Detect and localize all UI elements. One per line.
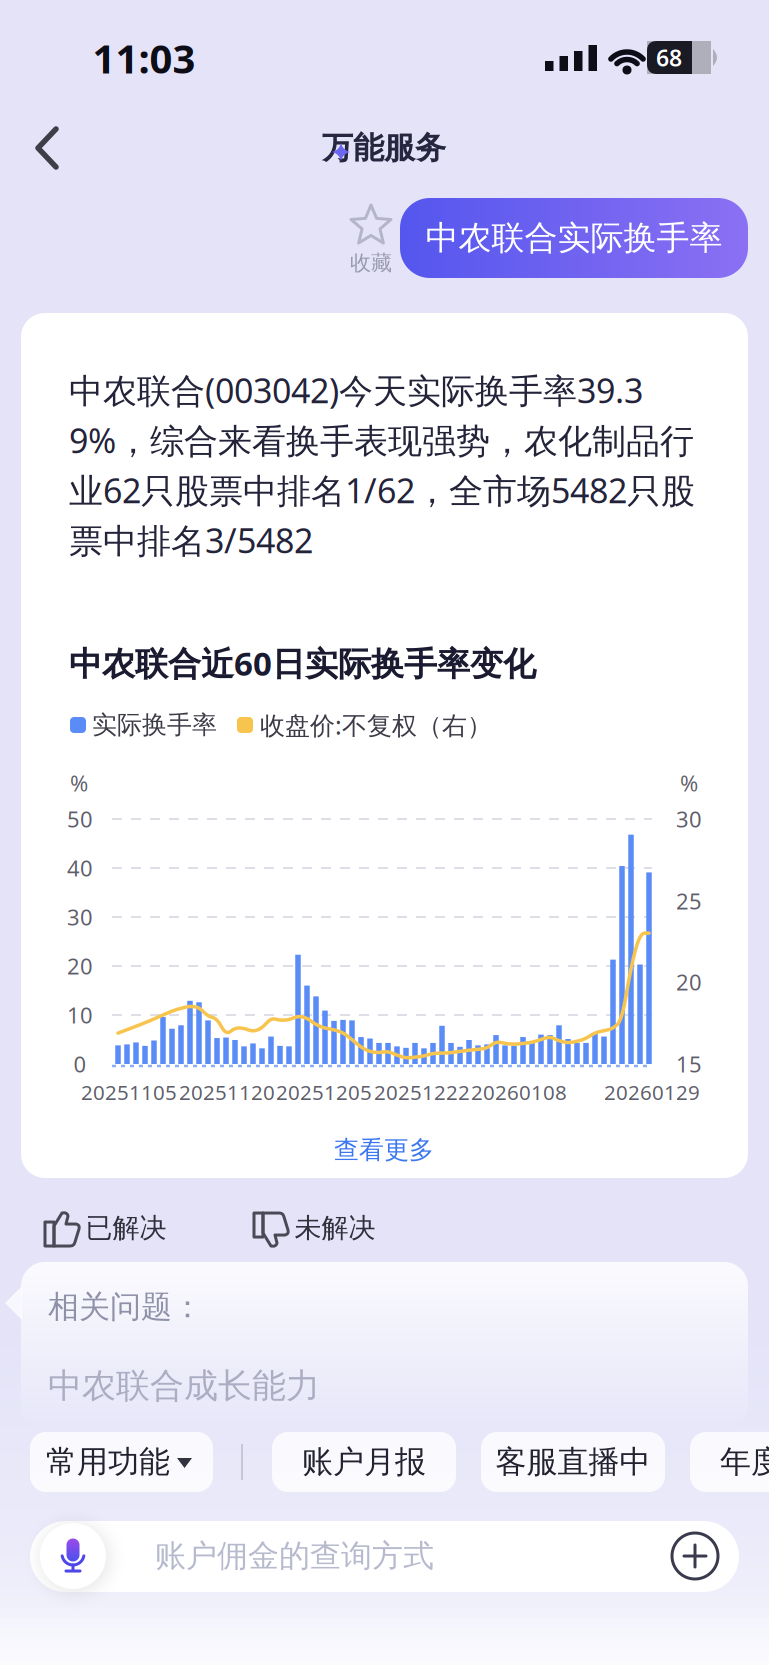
staticText: 0	[73, 1049, 86, 1079]
button[interactable]: 查看更多	[264, 1120, 504, 1180]
staticText: 未解决	[294, 1211, 375, 1245]
staticText: %	[680, 768, 698, 798]
staticText: 20	[676, 967, 702, 997]
button[interactable]: 中农联合实际换手率	[400, 198, 748, 278]
staticText: 中农联合近60日实际换手率变化	[69, 640, 536, 685]
button[interactable]: 返回	[19, 120, 75, 176]
staticText: 20251120	[179, 1078, 275, 1106]
staticText: %	[70, 768, 88, 798]
staticText: 万能服务	[322, 128, 446, 168]
button[interactable]: 语音输入	[38, 1521, 108, 1591]
staticText: 30	[67, 902, 93, 932]
staticText: 实际换手率	[92, 709, 217, 741]
button[interactable]: 年度账单	[690, 1432, 769, 1492]
staticText: 收藏	[350, 250, 392, 276]
staticText: 68	[656, 42, 682, 73]
staticText: 票中排名3/5482	[69, 517, 313, 563]
staticText: 20	[67, 951, 93, 981]
staticText: 40	[67, 853, 93, 883]
staticText: 年度账单	[720, 1442, 769, 1482]
staticText: 20251205	[276, 1078, 372, 1106]
staticText: 业62只股票中排名1/62，全市场5482只股	[69, 467, 695, 513]
button[interactable]: 更多功能	[672, 1533, 718, 1579]
staticText: 已解决	[85, 1211, 166, 1245]
button[interactable]: 未解决	[246, 1205, 382, 1253]
button[interactable]: 客服直播中	[481, 1432, 665, 1492]
staticText: 11:03	[92, 31, 195, 85]
staticText: 中农联合成长能力	[48, 1365, 320, 1407]
button[interactable]: 账户月报	[272, 1432, 456, 1492]
staticText: 50	[67, 804, 93, 834]
staticText: 账户佣金的查询方式	[155, 1536, 434, 1576]
staticText: 9%，综合来看换手表现强势，农化制品行	[69, 417, 694, 463]
staticText: 中农联合(003042)今天实际换手率39.3	[69, 367, 643, 413]
staticText: 收盘价:不复权（右）	[260, 708, 492, 742]
button[interactable]: 收藏	[341, 198, 401, 282]
staticText: 20251222	[374, 1078, 470, 1106]
staticText: 查看更多	[334, 1134, 434, 1166]
staticText: 常用功能	[46, 1442, 170, 1482]
button[interactable]: 已解决	[37, 1205, 173, 1253]
staticText: 中农联合实际换手率	[425, 217, 722, 259]
staticText: 10	[67, 1000, 93, 1030]
staticText: 20260129	[604, 1078, 700, 1106]
staticText: 客服直播中	[495, 1442, 650, 1482]
staticText: 25	[676, 886, 702, 916]
staticText: 30	[676, 804, 702, 834]
button[interactable]: 中农联合成长能力	[48, 1365, 720, 1407]
staticText: 15	[676, 1049, 702, 1079]
button[interactable]: 常用功能	[30, 1432, 213, 1492]
staticText: 账户月报	[302, 1442, 426, 1482]
staticText: 20260108	[471, 1078, 567, 1106]
staticText: 相关问题：	[48, 1287, 203, 1327]
staticText: 20251105	[81, 1078, 177, 1106]
